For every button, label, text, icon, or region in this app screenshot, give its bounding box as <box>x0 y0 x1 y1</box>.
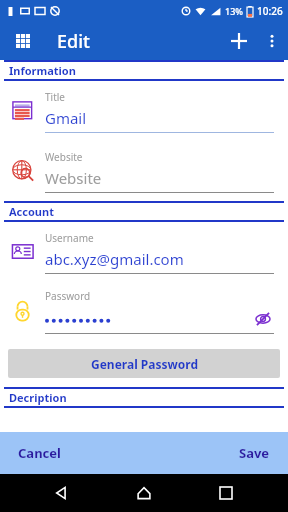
button[interactable]: Save <box>221 434 288 472</box>
staticText: Cancel <box>18 444 61 462</box>
staticText: abc.xyz@gmail.com <box>45 249 184 269</box>
staticText: 10:26 <box>257 4 283 18</box>
button[interactable]: General Password <box>8 349 280 378</box>
button[interactable]: Cancel <box>0 434 79 472</box>
staticText: Account <box>9 204 54 219</box>
button[interactable]: Password <box>0 282 288 340</box>
button[interactable]: Title <box>0 81 288 141</box>
staticText: General Password <box>91 356 198 372</box>
button[interactable]: Username <box>0 222 288 282</box>
button[interactable]: Apps <box>10 28 36 54</box>
staticText: Website <box>45 168 102 188</box>
staticText: Username <box>45 231 94 245</box>
staticText: 13% <box>225 5 243 17</box>
staticText: Website <box>45 150 83 164</box>
staticText: Edit <box>57 29 90 54</box>
button[interactable]: Website <box>0 141 288 201</box>
staticText: Decription <box>9 390 67 405</box>
staticText: Title <box>45 90 65 104</box>
button[interactable]: Add <box>222 24 256 58</box>
button[interactable]: Show password <box>252 308 274 330</box>
staticText: Information <box>9 63 76 78</box>
button[interactable]: Home <box>124 474 164 512</box>
button[interactable]: Recents <box>206 474 246 512</box>
staticText: Save <box>239 444 270 462</box>
button[interactable]: More options <box>256 25 288 57</box>
button[interactable]: Back <box>42 474 82 512</box>
staticText: Gmail <box>45 108 87 128</box>
staticText: Password <box>45 289 91 303</box>
